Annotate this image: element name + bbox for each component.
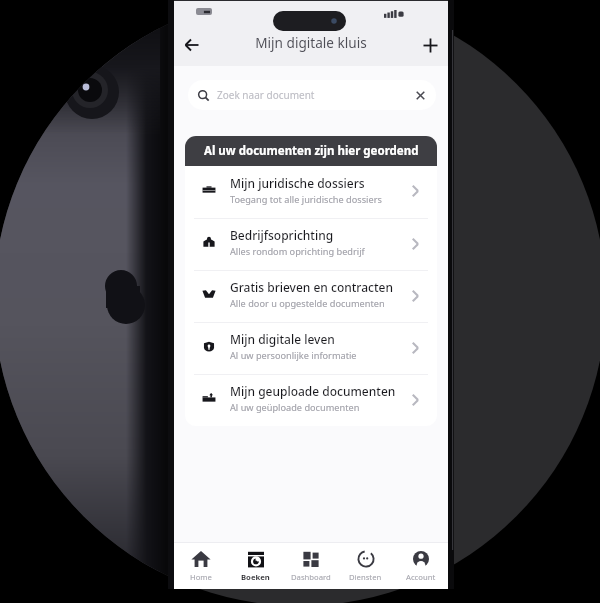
- button[interactable]: Mijn geuploade documenten: [185, 375, 437, 426]
- button[interactable]: Account: [393, 543, 448, 582]
- staticText: Diensten: [349, 572, 382, 582]
- staticText: Zoek naar document: [217, 88, 315, 102]
- button[interactable]: Boeken: [228, 543, 283, 582]
- staticText: Account: [406, 572, 436, 582]
- button[interactable]: Zoek naar document: [188, 80, 436, 110]
- button[interactable]: Add: [415, 30, 445, 60]
- staticText: Al uw documenten zijn hier geordend: [204, 143, 419, 159]
- button[interactable]: Mijn digitale leven: [185, 323, 437, 374]
- button[interactable]: Bedrijfsoprichting: [185, 219, 437, 270]
- staticText: Mijn juridische dossiers: [230, 175, 365, 191]
- button[interactable]: Diensten: [338, 543, 393, 582]
- staticText: Toegang tot alle juridische dossiers: [230, 193, 382, 206]
- staticText: Dashboard: [291, 572, 331, 582]
- staticText: Bedrijfsoprichting: [230, 227, 334, 243]
- button[interactable]: Home: [174, 543, 228, 582]
- staticText: Alle door u opgestelde documenten: [230, 297, 385, 310]
- button[interactable]: Gratis brieven en contracten: [185, 271, 437, 322]
- button[interactable]: Mijn juridische dossiers: [185, 166, 437, 218]
- button[interactable]: Dashboard: [283, 543, 338, 582]
- button[interactable]: Clear search: [413, 88, 427, 102]
- staticText: Alles rondom oprichting bedrijf: [230, 245, 365, 258]
- staticText: Gratis brieven en contracten: [230, 279, 393, 295]
- staticText: Mijn digitale leven: [230, 331, 335, 347]
- staticText: Al uw persoonlijke informatie: [230, 349, 357, 362]
- staticText: Home: [190, 572, 212, 582]
- staticText: Mijn digitale kluis: [255, 33, 367, 52]
- staticText: Al uw geüploade documenten: [230, 401, 360, 414]
- button[interactable]: Back: [177, 30, 207, 60]
- staticText: Boeken: [241, 572, 270, 582]
- staticText: Mijn geuploade documenten: [230, 383, 396, 399]
